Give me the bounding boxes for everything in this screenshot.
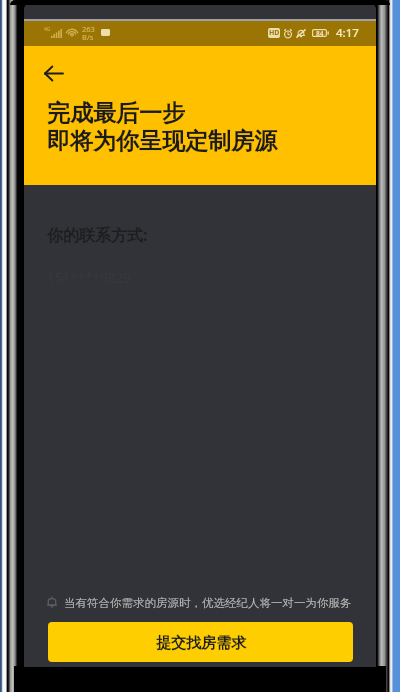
staticText: 84	[316, 29, 324, 37]
button[interactable]: Back	[31, 51, 75, 95]
staticText: 当有符合你需求的房源时，优选经纪人将一对一为你服务	[64, 596, 352, 610]
staticText: HD	[269, 28, 280, 38]
staticText: 263 B/s	[82, 24, 95, 42]
staticText: 4G	[44, 26, 51, 33]
staticText: 你的联系方式:	[47, 224, 148, 246]
staticText: 提交找房需求	[156, 634, 246, 653]
staticText: 4:17	[336, 25, 359, 41]
staticText: 完成最后一步 即将为你呈现定制房源	[47, 99, 277, 156]
button[interactable]: 提交找房需求	[48, 622, 353, 662]
